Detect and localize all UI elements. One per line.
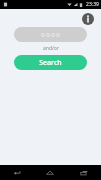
button[interactable]: Home xyxy=(33,165,67,180)
staticText: 23:39 xyxy=(86,1,99,8)
staticText: 0 0 0 0 xyxy=(41,31,60,39)
button[interactable]: Search xyxy=(14,55,87,70)
button[interactable]: Recent apps xyxy=(67,165,101,180)
button[interactable]: 0 0 0 0 xyxy=(14,27,87,42)
staticText: and/or xyxy=(43,45,59,52)
button[interactable]: Info xyxy=(82,13,94,25)
staticText: Search xyxy=(39,58,62,68)
button[interactable]: Back xyxy=(0,165,33,180)
